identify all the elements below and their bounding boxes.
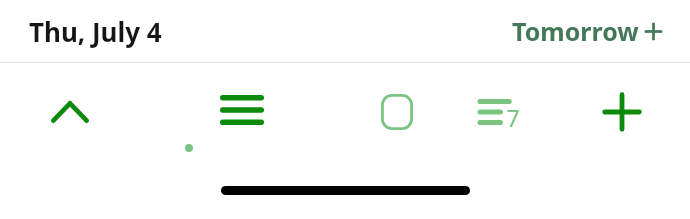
button[interactable]: Thu, July 4 [29, 14, 162, 49]
staticText: 7 [506, 102, 520, 133]
button[interactable]: Add [594, 84, 650, 140]
button[interactable]: Agenda, 7 days [468, 84, 524, 140]
staticText: Tomorrow [512, 14, 639, 48]
button[interactable]: Tomorrow [512, 14, 663, 48]
button[interactable]: Collapse [42, 84, 98, 140]
button[interactable]: Menu [214, 82, 270, 138]
button[interactable]: Device [369, 84, 425, 140]
